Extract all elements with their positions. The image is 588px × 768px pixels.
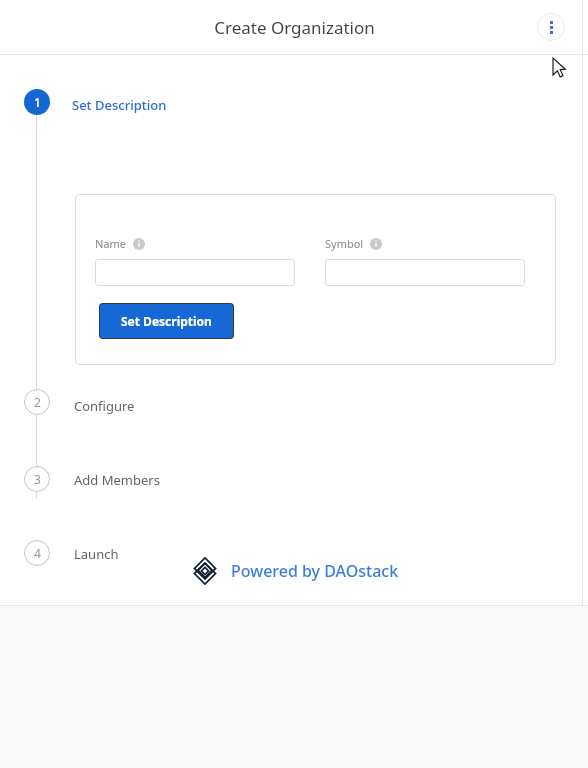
button[interactable]: 2	[24, 389, 50, 415]
button[interactable]: 4	[24, 540, 50, 566]
button[interactable]: Set Description	[99, 303, 234, 339]
staticText: 3	[34, 471, 41, 487]
button[interactable]	[95, 259, 295, 286]
staticText: Name	[95, 236, 127, 251]
staticText: 4	[34, 545, 41, 561]
button[interactable]: Info about Name	[133, 238, 145, 250]
staticText: Add Members	[74, 471, 160, 489]
staticText: Configure	[74, 397, 135, 415]
staticText: Set Description	[121, 313, 212, 329]
staticText: Symbol	[325, 236, 364, 251]
button[interactable]: Info about Symbol	[370, 238, 382, 250]
button[interactable]: More options	[537, 13, 565, 41]
button[interactable]: Set Description	[71, 94, 168, 116]
staticText: Powered by DAOstack	[231, 560, 399, 582]
staticText: Set Description	[72, 96, 167, 114]
staticText: 2	[34, 394, 41, 410]
staticText: Launch	[74, 545, 119, 563]
button[interactable]: Launch	[74, 543, 119, 565]
button[interactable]: 1	[24, 89, 50, 115]
staticText: 1	[34, 94, 41, 110]
button[interactable]: Add Members	[74, 469, 160, 491]
button[interactable]: Powered by DAOstack	[185, 551, 403, 591]
button[interactable]	[325, 259, 525, 286]
button[interactable]: Configure	[74, 395, 135, 417]
button[interactable]: 3	[24, 466, 50, 492]
staticText: Create Organization	[214, 16, 375, 39]
